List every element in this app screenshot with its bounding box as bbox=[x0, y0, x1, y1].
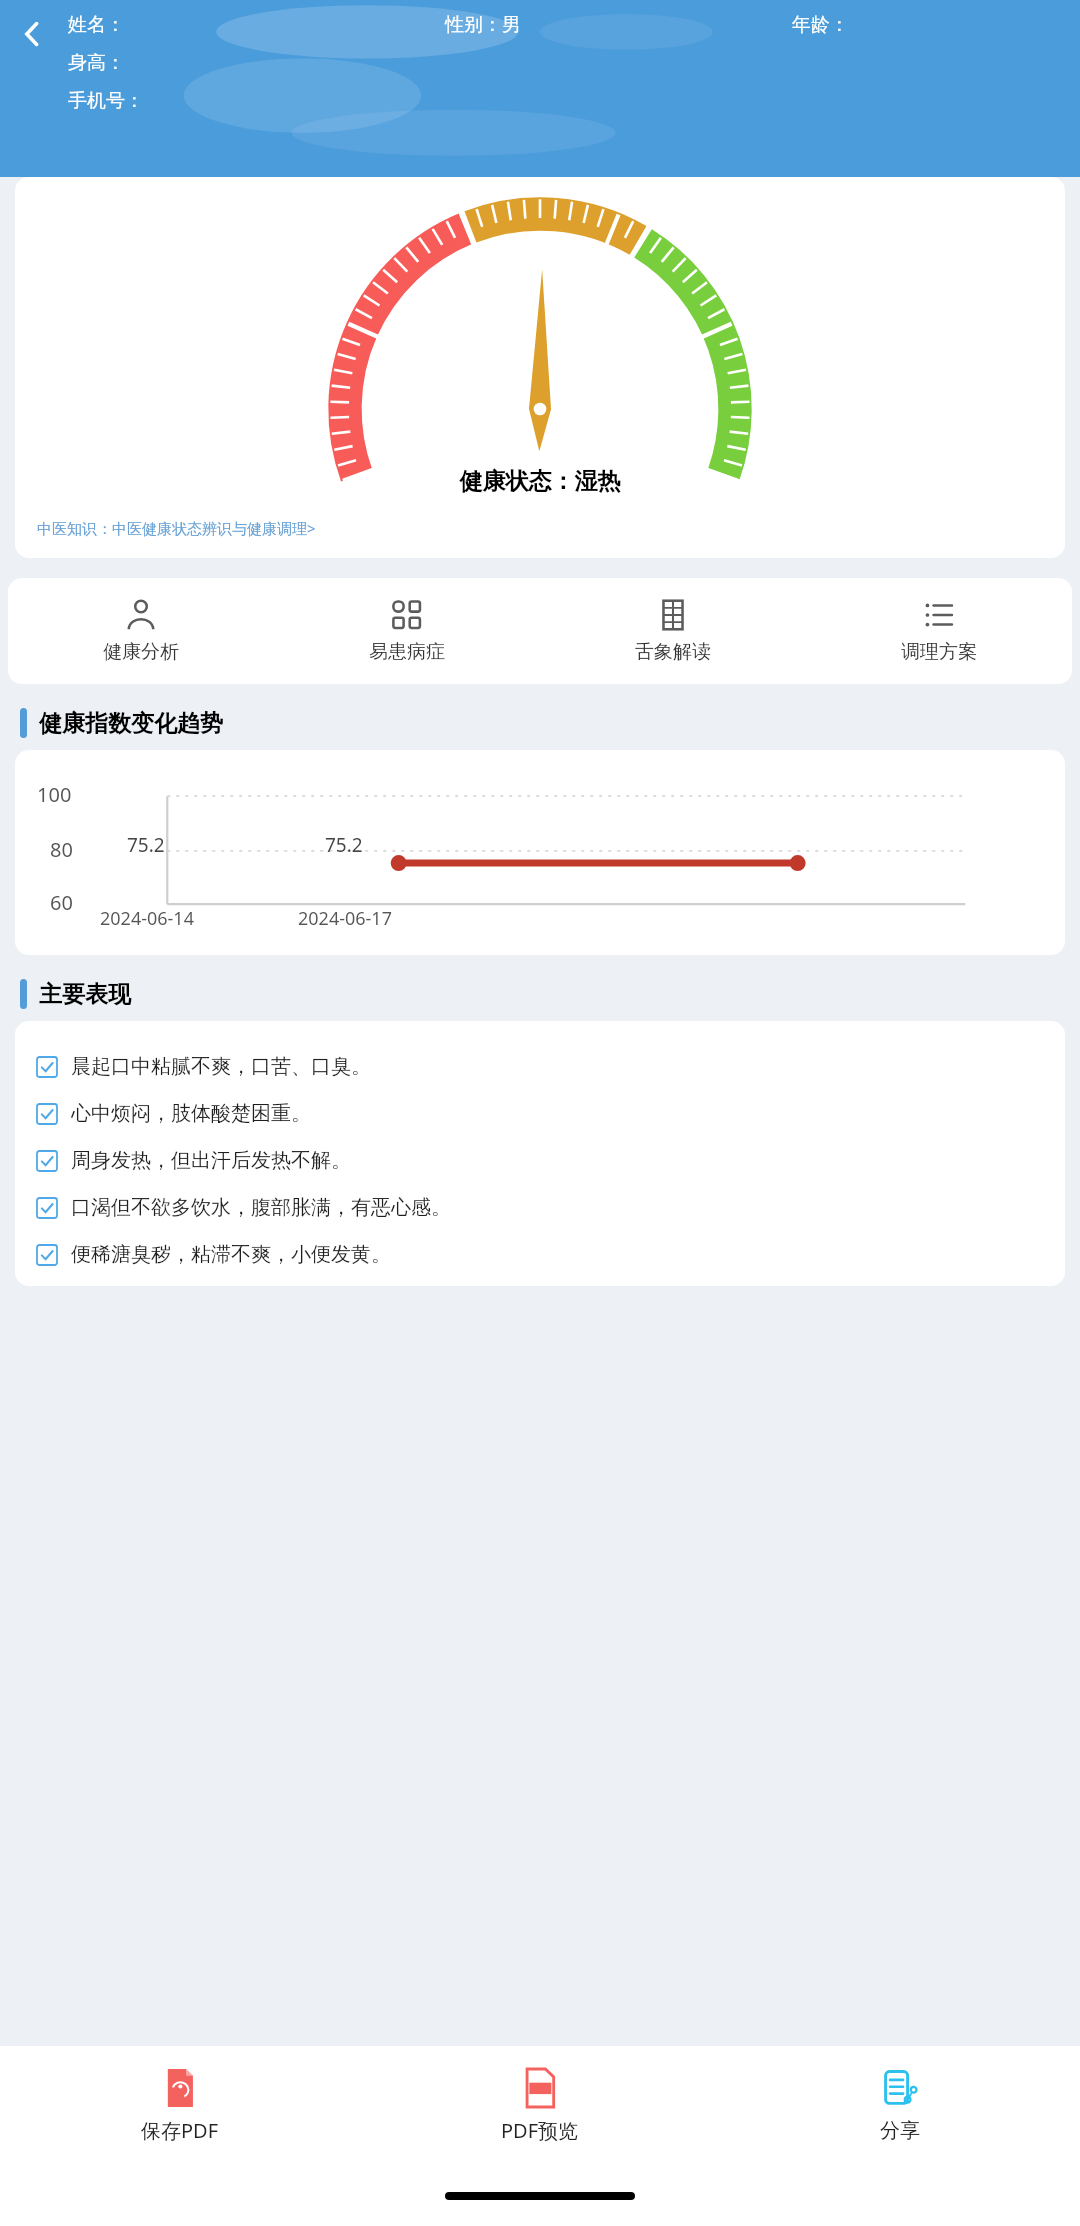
staticText: 100 bbox=[37, 781, 72, 808]
button[interactable]: 易患病症 bbox=[274, 594, 540, 668]
button[interactable]: 晨起口中粘腻不爽，口苦、口臭。 bbox=[37, 1043, 1049, 1090]
staticText: 年龄： bbox=[792, 13, 1064, 37]
staticText: 保存PDF bbox=[141, 2117, 219, 2144]
staticText: 调理方案 bbox=[901, 640, 977, 664]
staticText: 75.2 bbox=[325, 832, 363, 858]
staticText: 2024-06-14 bbox=[100, 906, 194, 931]
button[interactable]: 调理方案 bbox=[806, 594, 1072, 668]
staticText: 晨起口中粘腻不爽，口苦、口臭。 bbox=[71, 1054, 371, 1079]
staticText: 分享 bbox=[880, 2118, 920, 2143]
button[interactable]: 分享 bbox=[720, 2064, 1080, 2149]
staticText: 中医知识：中医健康状态辨识与健康调理> bbox=[37, 518, 316, 538]
staticText: 60 bbox=[50, 889, 73, 916]
staticText: 易患病症 bbox=[369, 640, 445, 664]
staticText: 心中烦闷，肢体酸楚困重。 bbox=[71, 1101, 311, 1126]
staticText: 健康状态：湿热 bbox=[15, 467, 1065, 496]
staticText: 2024-06-17 bbox=[298, 906, 392, 931]
button[interactable]: 中医知识：中医健康状态辨识与健康调理> bbox=[15, 518, 1065, 558]
staticText: 80 bbox=[50, 836, 73, 863]
button[interactable]: 健康分析 bbox=[8, 594, 274, 668]
staticText: 手机号： bbox=[68, 89, 144, 113]
staticText: 口渴但不欲多饮水，腹部胀满，有恶心感。 bbox=[71, 1195, 451, 1220]
button[interactable]: 便稀溏臭秽，粘滞不爽，小便发黄。 bbox=[37, 1231, 1049, 1278]
button[interactable]: 保存PDF bbox=[0, 2063, 360, 2150]
staticText: 姓名： bbox=[68, 13, 445, 37]
button[interactable]: 口渴但不欲多饮水，腹部胀满，有恶心感。 bbox=[37, 1184, 1049, 1231]
staticText: 健康分析 bbox=[103, 640, 179, 664]
staticText: 健康指数变化趋势 bbox=[39, 709, 223, 738]
staticText: 主要表现 bbox=[39, 980, 131, 1009]
staticText: 性别：男 bbox=[445, 13, 792, 37]
staticText: 便稀溏臭秽，粘滞不爽，小便发黄。 bbox=[71, 1242, 391, 1267]
button[interactable]: PDF预览 bbox=[360, 2063, 720, 2150]
staticText: 身高： bbox=[68, 51, 125, 75]
button[interactable]: 舌象解读 bbox=[540, 594, 806, 668]
staticText: 周身发热，但出汗后发热不解。 bbox=[71, 1148, 351, 1173]
staticText: 75.2 bbox=[127, 832, 165, 858]
staticText: PDF预览 bbox=[501, 2117, 579, 2144]
button[interactable]: 周身发热，但出汗后发热不解。 bbox=[37, 1137, 1049, 1184]
button[interactable]: Back bbox=[6, 8, 58, 60]
staticText: 舌象解读 bbox=[635, 640, 711, 664]
button[interactable]: 心中烦闷，肢体酸楚困重。 bbox=[37, 1090, 1049, 1137]
